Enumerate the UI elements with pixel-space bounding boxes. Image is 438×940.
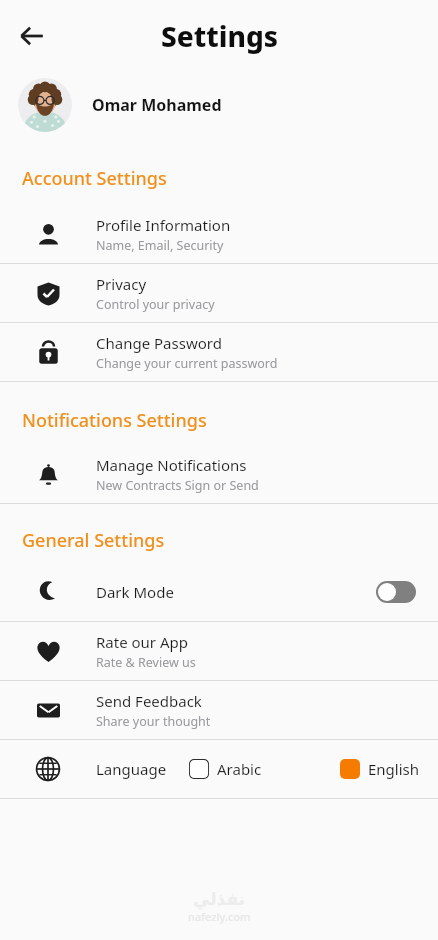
staticText: Change Password	[96, 333, 222, 353]
staticText: Settings	[161, 17, 278, 55]
staticText: English	[368, 759, 420, 779]
button[interactable]: Arabic	[189, 759, 262, 779]
staticText: Share your thought	[96, 713, 211, 730]
button[interactable]: Privacy	[0, 264, 438, 322]
staticText: Manage Notifications	[96, 455, 247, 475]
button[interactable]: Profile Information	[0, 205, 438, 263]
staticText: Notifications Settings	[22, 408, 207, 433]
staticText: Account Settings	[22, 166, 167, 191]
button[interactable]: Back	[12, 16, 52, 56]
staticText: Send Feedback	[96, 691, 202, 711]
staticText: Language	[96, 759, 167, 779]
staticText: Arabic	[217, 759, 262, 779]
button[interactable]: Manage Notifications	[0, 445, 438, 503]
staticText: نفذلي	[193, 889, 246, 909]
staticText: General Settings	[22, 528, 165, 553]
button[interactable]: Omar Mohamed	[0, 72, 438, 138]
staticText: Control your privacy	[96, 296, 215, 313]
staticText: Name, Email, Security	[96, 237, 224, 254]
staticText: nafezly.com	[188, 909, 251, 924]
staticText: Profile Information	[96, 215, 231, 235]
button[interactable]: Dark Mode	[0, 563, 438, 621]
staticText: Rate our App	[96, 632, 188, 652]
button[interactable]: Change Password	[0, 323, 438, 381]
staticText: Dark Mode	[96, 582, 174, 602]
button[interactable]: Rate our App	[0, 622, 438, 680]
staticText: Change your current password	[96, 355, 278, 372]
button[interactable]: Send Feedback	[0, 681, 438, 739]
staticText: Privacy	[96, 274, 147, 294]
button[interactable]: Dark Mode toggle	[376, 581, 416, 603]
staticText: Rate & Review us	[96, 654, 196, 671]
staticText: Omar Mohamed	[92, 94, 222, 116]
button[interactable]: English	[340, 759, 420, 779]
staticText: New Contracts Sign or Send	[96, 477, 259, 494]
